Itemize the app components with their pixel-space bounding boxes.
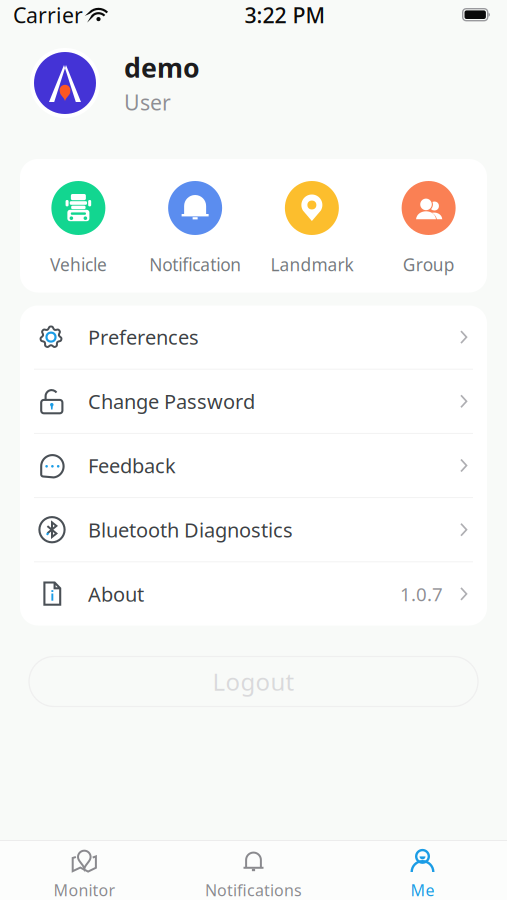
button[interactable]: demo bbox=[0, 46, 507, 120]
staticText: Notification bbox=[149, 253, 241, 276]
staticText: Feedback bbox=[88, 452, 176, 479]
staticText: Vehicle bbox=[50, 253, 107, 276]
button[interactable]: Change Password bbox=[20, 370, 487, 433]
button[interactable]: Vehicle bbox=[20, 159, 137, 292]
button[interactable]: Preferences bbox=[20, 305, 487, 369]
staticText: About bbox=[88, 581, 144, 607]
staticText: Me bbox=[410, 879, 434, 900]
staticText: Carrier bbox=[13, 1, 83, 29]
staticText: Change Password bbox=[88, 388, 255, 415]
button[interactable]: Notification bbox=[137, 159, 254, 292]
button[interactable]: Notifications bbox=[169, 847, 338, 900]
staticText: Logout bbox=[212, 666, 294, 697]
button[interactable]: Group bbox=[370, 159, 487, 292]
staticText: Preferences bbox=[88, 324, 199, 350]
button[interactable]: Me bbox=[338, 847, 507, 900]
button[interactable]: Landmark bbox=[253, 159, 370, 292]
staticText: demo bbox=[124, 50, 200, 85]
button[interactable]: About bbox=[20, 562, 487, 625]
staticText: Landmark bbox=[270, 253, 353, 276]
staticText: Group bbox=[403, 253, 455, 276]
button[interactable]: Feedback bbox=[20, 434, 487, 497]
button[interactable]: Monitor bbox=[0, 847, 169, 900]
staticText: Bluetooth Diagnostics bbox=[88, 516, 293, 543]
staticText: 3:22 PM bbox=[244, 1, 325, 29]
staticText: 1.0.7 bbox=[400, 581, 443, 606]
button[interactable]: Logout bbox=[29, 656, 478, 706]
staticText: Monitor bbox=[53, 879, 115, 900]
staticText: Notifications bbox=[205, 879, 302, 900]
staticText: User bbox=[124, 88, 171, 116]
button[interactable]: Bluetooth Diagnostics bbox=[20, 498, 487, 561]
